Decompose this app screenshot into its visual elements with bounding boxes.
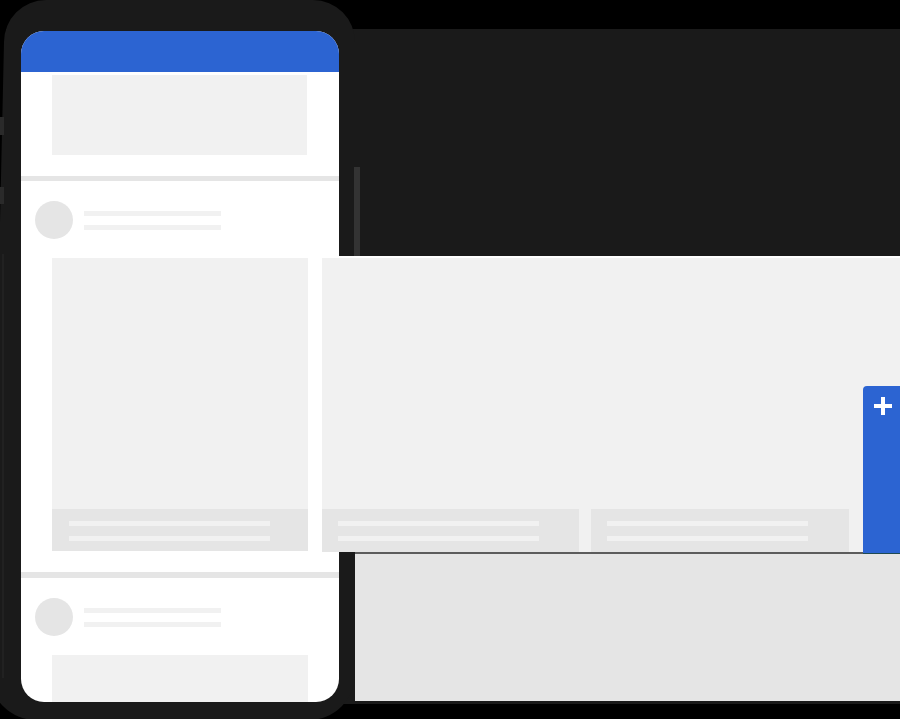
button[interactable]: Open card [322,509,579,552]
button[interactable]: Open card [591,509,849,552]
button[interactable]: App bar [21,31,339,72]
button[interactable]: Open profile [21,201,339,258]
button[interactable]: Open post [52,258,308,551]
button[interactable]: Add [863,386,900,553]
button[interactable]: Open profile [21,598,339,655]
other: Power [354,167,360,258]
